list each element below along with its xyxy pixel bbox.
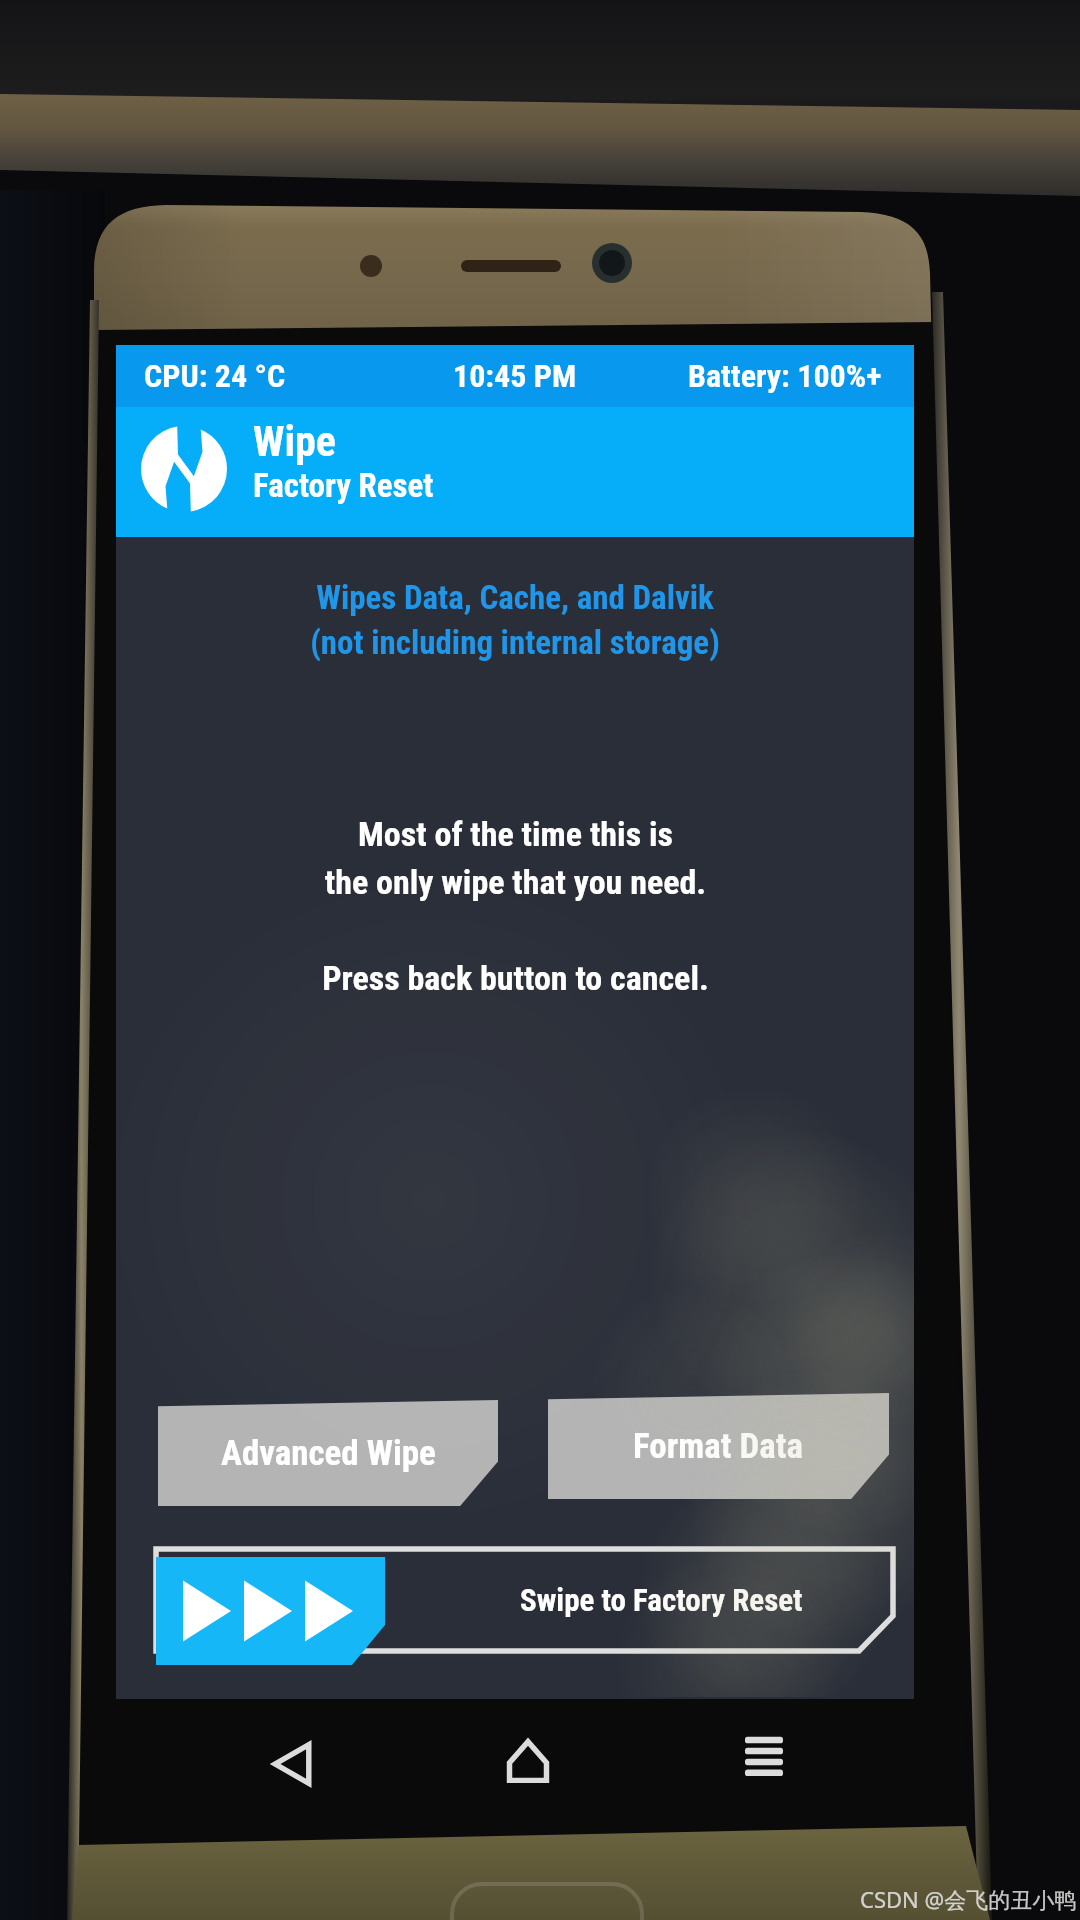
- button[interactable]: Home: [469, 1702, 587, 1820]
- button[interactable]: Menu: [705, 1698, 823, 1816]
- button[interactable]: Format Data: [548, 1393, 889, 1499]
- staticText: Advanced Wipe: [221, 1433, 436, 1474]
- staticText: CSDN @会飞的丑小鸭丶: [860, 1884, 1080, 1914]
- staticText: CPU: 24 °C: [144, 357, 286, 395]
- staticText: Battery: 100%+: [688, 357, 882, 395]
- staticText: Format Data: [633, 1426, 804, 1467]
- staticText: Wipe: [253, 417, 336, 466]
- button[interactable]: Swipe to Factory Reset: [154, 1546, 896, 1666]
- staticText: Wipes Data, Cache, and Dalvik (not inclu…: [310, 578, 720, 662]
- button[interactable]: Back: [233, 1705, 351, 1823]
- button[interactable]: Wipe: [116, 407, 914, 537]
- staticText: 10:45 PM: [453, 357, 577, 395]
- button[interactable]: Advanced Wipe: [158, 1400, 498, 1506]
- staticText: Swipe to Factory Reset: [520, 1582, 803, 1618]
- staticText: Factory Reset: [253, 466, 434, 505]
- staticText: Most of the time this is the only wipe t…: [322, 814, 709, 998]
